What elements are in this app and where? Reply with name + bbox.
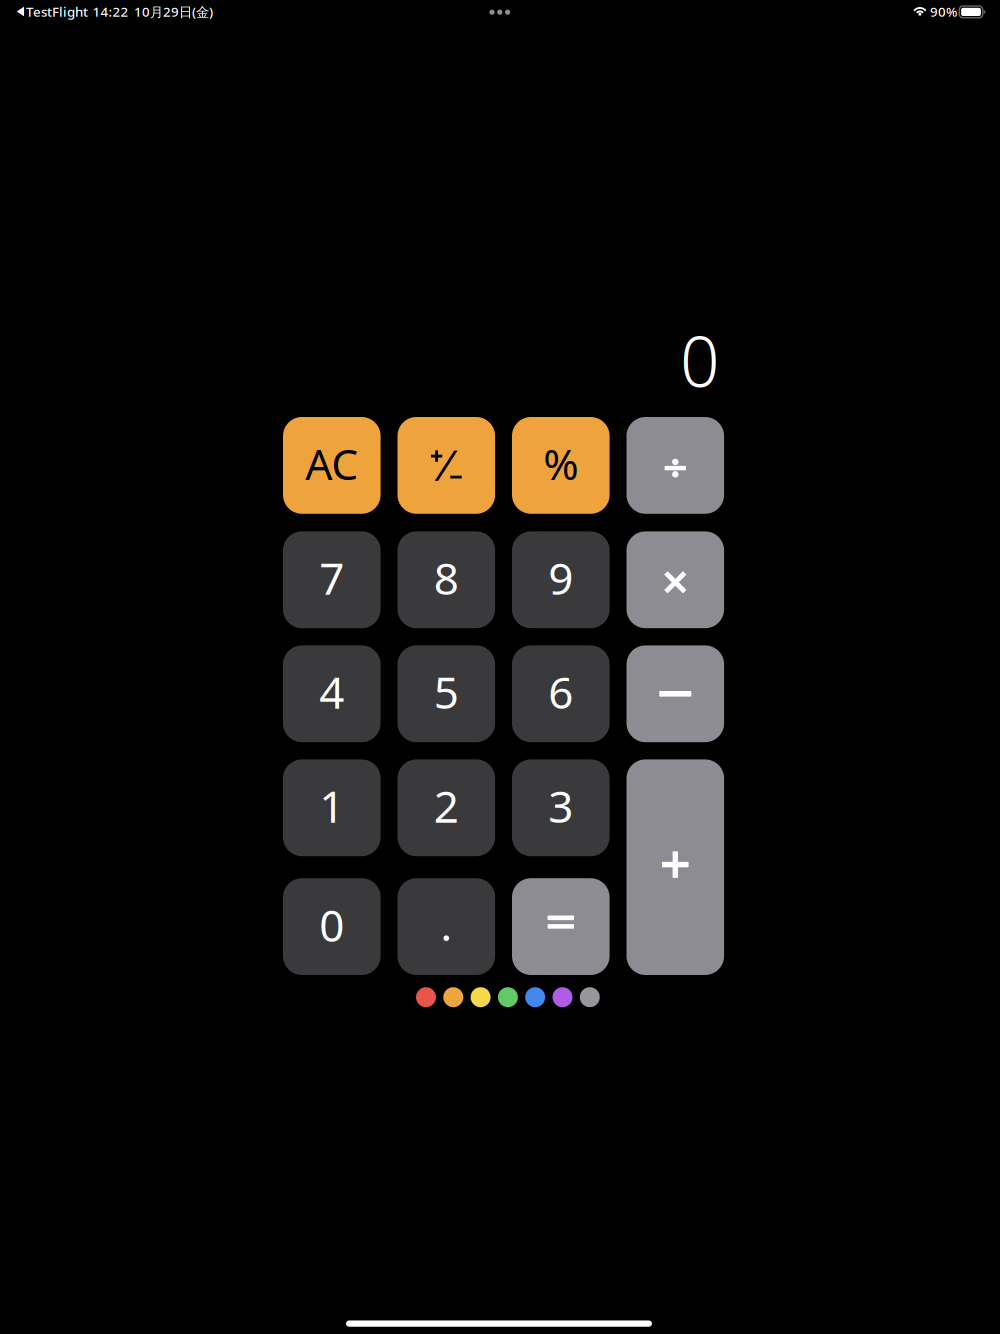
button[interactable]: Plus minus	[397, 417, 495, 514]
button[interactable]: 7	[283, 531, 381, 628]
button[interactable]: All clear	[283, 417, 381, 514]
button[interactable]: Decimal point	[397, 878, 495, 975]
staticText: 3	[548, 777, 573, 835]
button[interactable]: Red theme	[416, 987, 436, 1007]
staticText: TestFlight	[26, 3, 88, 20]
staticText: 14:22	[92, 3, 128, 20]
button[interactable]: 0	[283, 878, 381, 975]
button[interactable]: Subtract	[626, 645, 724, 742]
staticText: 10月29日(金)	[134, 3, 213, 20]
staticText: 90%	[930, 3, 957, 20]
staticText: %	[543, 435, 578, 492]
staticText: 6	[548, 663, 573, 721]
staticText: 0	[319, 895, 344, 954]
button[interactable]: 2	[397, 759, 495, 856]
button[interactable]: 8	[397, 531, 495, 628]
button[interactable]: Grey theme	[580, 987, 600, 1007]
button[interactable]: Orange theme	[443, 987, 463, 1007]
staticText: 9	[548, 549, 573, 607]
staticText: 4	[319, 663, 344, 721]
button[interactable]: 1	[283, 759, 381, 856]
button[interactable]: 9	[512, 531, 610, 628]
button[interactable]: 4	[283, 645, 381, 742]
staticText: 8	[434, 549, 459, 607]
button[interactable]: 3	[512, 759, 610, 856]
button[interactable]: Percent	[512, 417, 610, 514]
button[interactable]: Purple theme	[552, 987, 572, 1007]
button[interactable]: Add	[626, 759, 724, 975]
button[interactable]: Divide	[626, 417, 724, 514]
button[interactable]: Equals	[512, 878, 610, 975]
staticText: 0	[680, 314, 720, 406]
staticText: 5	[434, 663, 459, 721]
staticText: 1	[319, 777, 344, 835]
button[interactable]: 5	[397, 645, 495, 742]
button[interactable]: Yellow theme	[471, 987, 491, 1007]
staticText: AC	[305, 435, 358, 492]
button[interactable]: Blue theme	[525, 987, 545, 1007]
staticText: 7	[319, 549, 344, 607]
button[interactable]: 6	[512, 645, 610, 742]
button[interactable]: Green theme	[498, 987, 518, 1007]
staticText: 2	[434, 777, 459, 835]
button[interactable]: Multiply	[626, 531, 724, 628]
